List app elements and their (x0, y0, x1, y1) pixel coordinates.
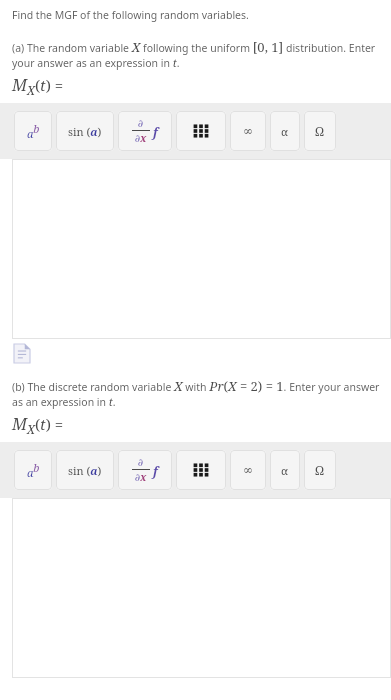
button[interactable]: Exponent (14, 111, 52, 151)
staticText: Ω (315, 123, 325, 139)
staticText: f (153, 124, 158, 140)
button[interactable]: Answer input (12, 159, 391, 339)
staticText: ∞ (243, 124, 253, 138)
button[interactable]: Symbols (304, 450, 336, 490)
button[interactable]: Exponent (14, 450, 52, 490)
staticText: MX(t) = (12, 413, 64, 437)
staticText: (b) The discrete random variable X with … (12, 377, 383, 409)
staticText: ∞ (243, 463, 253, 477)
button[interactable]: Partial derivative (118, 450, 172, 490)
button[interactable]: Infinity (230, 450, 266, 490)
button[interactable]: Greek letters (270, 111, 300, 151)
staticText: ab (27, 460, 40, 480)
staticText: sin (a) (68, 124, 102, 139)
staticText: Ω (315, 462, 325, 478)
staticText: Find the MGF of the following random var… (12, 8, 249, 22)
staticText: ∂ (138, 118, 144, 130)
button[interactable]: Partial derivative (118, 111, 172, 151)
staticText: α (281, 463, 289, 478)
staticText: ab (27, 121, 40, 141)
button[interactable]: Trigonometric function (56, 450, 114, 490)
button[interactable]: Matrix (176, 111, 226, 151)
button[interactable]: Trigonometric function (56, 111, 114, 151)
staticText: α (281, 124, 289, 139)
staticText: (a) The random variable X following the … (12, 38, 383, 70)
staticText: MX(t) = (12, 74, 64, 98)
staticText: ∂x (135, 131, 147, 145)
button[interactable]: Greek letters (270, 450, 300, 490)
staticText: f (153, 463, 158, 479)
button[interactable]: Infinity (230, 111, 266, 151)
staticText: ∂ (138, 457, 144, 469)
button[interactable]: Answer input (12, 498, 391, 678)
button[interactable]: Attach file (14, 344, 30, 363)
staticText: sin (a) (68, 463, 102, 478)
button[interactable]: Symbols (304, 111, 336, 151)
button[interactable]: Matrix (176, 450, 226, 490)
staticText: ∂x (135, 470, 147, 484)
